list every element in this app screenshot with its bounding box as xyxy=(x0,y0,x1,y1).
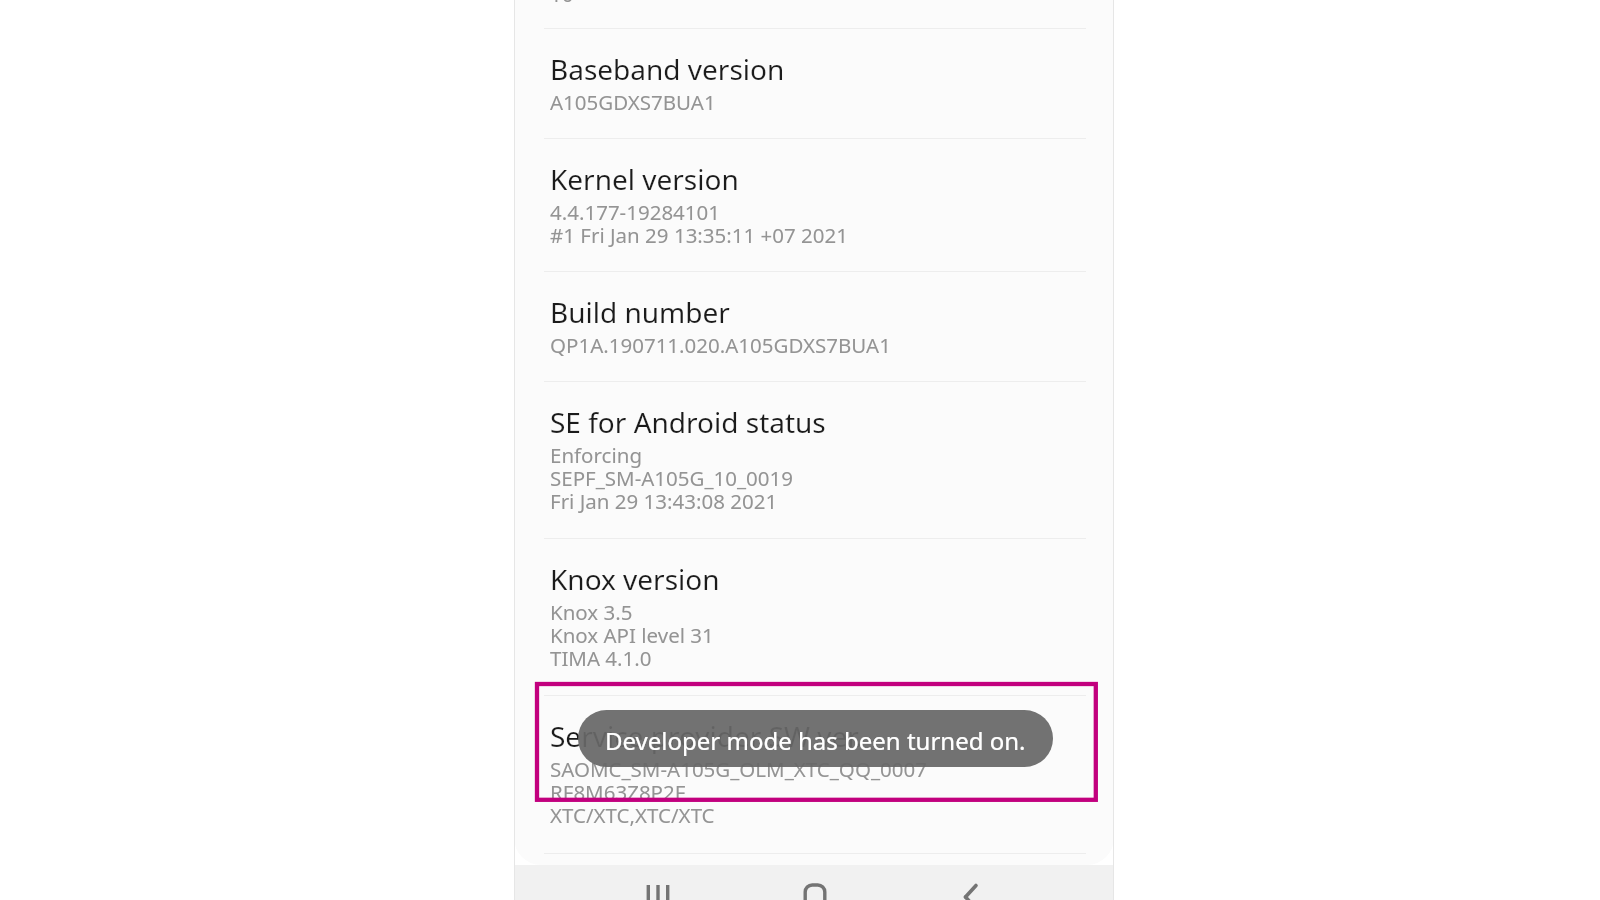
staticText: 10 xyxy=(550,0,574,8)
button[interactable]: Build number xyxy=(514,272,1114,381)
staticText: Enforcing SEPF_SM-A105G_10_0019 Fri Jan … xyxy=(550,441,794,515)
button[interactable]: Home xyxy=(795,885,835,900)
staticText: Baseband version xyxy=(550,50,785,88)
staticText: Knox version xyxy=(550,560,720,598)
button[interactable]: Service provider SW ver. xyxy=(514,696,1114,853)
button[interactable]: Back xyxy=(950,885,990,900)
button[interactable]: Recent apps xyxy=(638,885,678,900)
staticText: Kernel version xyxy=(550,160,739,198)
button[interactable]: Baseband version xyxy=(514,29,1114,138)
staticText: Developer mode has been turned on. xyxy=(605,724,1026,757)
staticText: QP1A.190711.020.A105GDXS7BUA1 xyxy=(550,331,891,359)
staticText: 4.4.177-19284101 #1 Fri Jan 29 13:35:11 … xyxy=(550,198,848,249)
staticText: SE for Android status xyxy=(550,403,826,441)
staticText: SAOMC_SM-A105G_OLM_XTC_QQ_0007 RF8M63Z8P… xyxy=(550,755,927,829)
button[interactable]: Kernel version xyxy=(514,139,1114,271)
staticText: Service provider SW ver. xyxy=(550,717,862,755)
staticText: A105GDXS7BUA1 xyxy=(550,88,716,116)
staticText: Knox 3.5 Knox API level 31 TIMA 4.1.0 xyxy=(550,598,714,672)
button[interactable]: SE for Android status xyxy=(514,382,1114,539)
staticText: Build number xyxy=(550,293,730,331)
button[interactable]: Knox version xyxy=(514,539,1114,695)
